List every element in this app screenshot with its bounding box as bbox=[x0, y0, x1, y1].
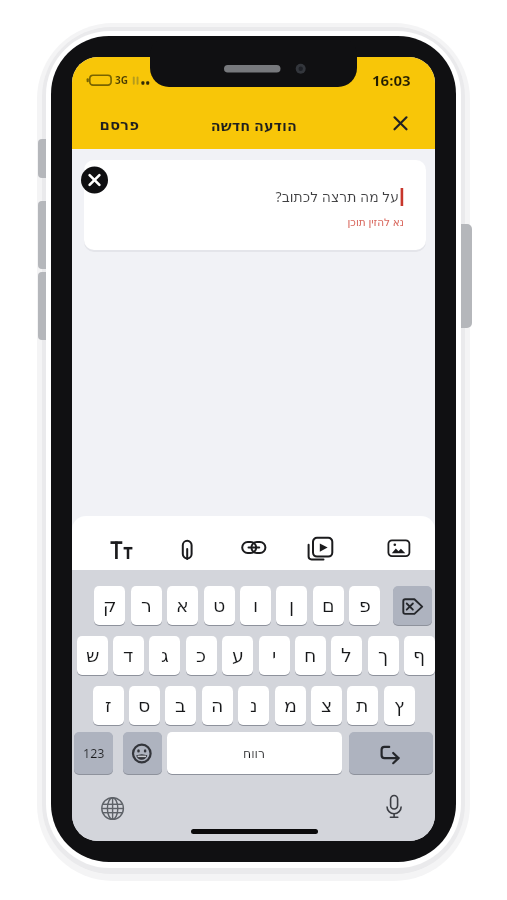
staticText: פרסם bbox=[99, 116, 139, 133]
staticText: י bbox=[272, 644, 277, 666]
button[interactable]: ת bbox=[347, 686, 378, 725]
button[interactable] bbox=[349, 732, 433, 774]
staticText: ס bbox=[138, 694, 151, 716]
button[interactable]: 123 bbox=[74, 732, 113, 774]
staticText: 123 bbox=[83, 745, 105, 762]
button[interactable]: ע bbox=[222, 636, 253, 675]
button[interactable] bbox=[242, 530, 266, 554]
staticText: ד bbox=[123, 644, 134, 666]
button[interactable]: ח bbox=[295, 636, 326, 675]
button[interactable]: פרסם bbox=[88, 113, 150, 136]
button[interactable]: נ bbox=[238, 686, 269, 725]
button[interactable]: ך bbox=[368, 636, 399, 675]
staticText: ר bbox=[141, 594, 152, 616]
button[interactable]: פ bbox=[349, 586, 380, 625]
button[interactable] bbox=[175, 530, 199, 554]
button[interactable]: ק bbox=[94, 586, 125, 625]
staticText: ה bbox=[211, 694, 224, 716]
button[interactable] bbox=[84, 160, 426, 250]
staticText: ת bbox=[356, 694, 369, 716]
staticText: מ bbox=[284, 694, 297, 716]
staticText: ם bbox=[322, 594, 335, 616]
button[interactable] bbox=[381, 794, 407, 820]
staticText: ץ bbox=[394, 694, 405, 716]
staticText: כ bbox=[196, 644, 207, 666]
staticText: ק bbox=[103, 594, 117, 616]
button[interactable] bbox=[308, 530, 332, 554]
staticText: ל bbox=[341, 644, 352, 666]
staticText: נ bbox=[250, 694, 258, 716]
staticText: ף bbox=[413, 644, 426, 666]
button[interactable] bbox=[100, 796, 126, 822]
staticText: א bbox=[176, 594, 189, 616]
staticText: פ bbox=[359, 594, 371, 616]
button[interactable] bbox=[389, 112, 413, 136]
button[interactable]: ו bbox=[240, 586, 271, 625]
button[interactable] bbox=[81, 167, 108, 194]
staticText: 3G bbox=[115, 73, 128, 87]
button[interactable] bbox=[108, 530, 132, 554]
staticText: ש bbox=[86, 644, 100, 666]
staticText: 16:03 bbox=[372, 70, 411, 90]
button[interactable] bbox=[393, 586, 432, 625]
button[interactable]: ץ bbox=[384, 686, 415, 725]
staticText: נא להזין תוכן bbox=[347, 215, 404, 229]
button[interactable]: ן bbox=[276, 586, 307, 625]
staticText: ז bbox=[105, 694, 112, 716]
staticText: ח bbox=[304, 644, 317, 666]
staticText: ו bbox=[253, 594, 259, 616]
staticText: ב bbox=[175, 694, 186, 716]
button[interactable]: צ bbox=[311, 686, 342, 725]
staticText: הודעה חדשה bbox=[210, 115, 297, 135]
button[interactable] bbox=[123, 732, 162, 774]
button[interactable]: ה bbox=[202, 686, 233, 725]
button[interactable]: מ bbox=[275, 686, 306, 725]
button[interactable]: ם bbox=[313, 586, 344, 625]
button[interactable]: כ bbox=[186, 636, 217, 675]
button[interactable]: ז bbox=[93, 686, 124, 725]
button[interactable]: ל bbox=[331, 636, 362, 675]
button[interactable]: רווח bbox=[167, 732, 342, 774]
staticText: רווח bbox=[243, 746, 266, 761]
button[interactable]: ד bbox=[113, 636, 144, 675]
staticText: צ bbox=[321, 694, 333, 716]
button[interactable]: י bbox=[259, 636, 290, 675]
button[interactable]: ס bbox=[129, 686, 160, 725]
button[interactable]: ש bbox=[77, 636, 108, 675]
staticText: ט bbox=[213, 594, 226, 616]
button[interactable]: ט bbox=[204, 586, 235, 625]
button[interactable]: א bbox=[167, 586, 198, 625]
staticText: ך bbox=[378, 644, 389, 666]
button[interactable]: ב bbox=[165, 686, 196, 725]
button[interactable]: ג bbox=[149, 636, 180, 675]
staticText: ן bbox=[289, 594, 295, 616]
button[interactable]: ר bbox=[131, 586, 162, 625]
button[interactable]: ף bbox=[404, 636, 435, 675]
staticText: על מה תרצה לכתוב? bbox=[275, 187, 399, 206]
staticText: ע bbox=[232, 644, 244, 666]
staticText: ג bbox=[161, 644, 169, 666]
button[interactable] bbox=[387, 530, 411, 554]
